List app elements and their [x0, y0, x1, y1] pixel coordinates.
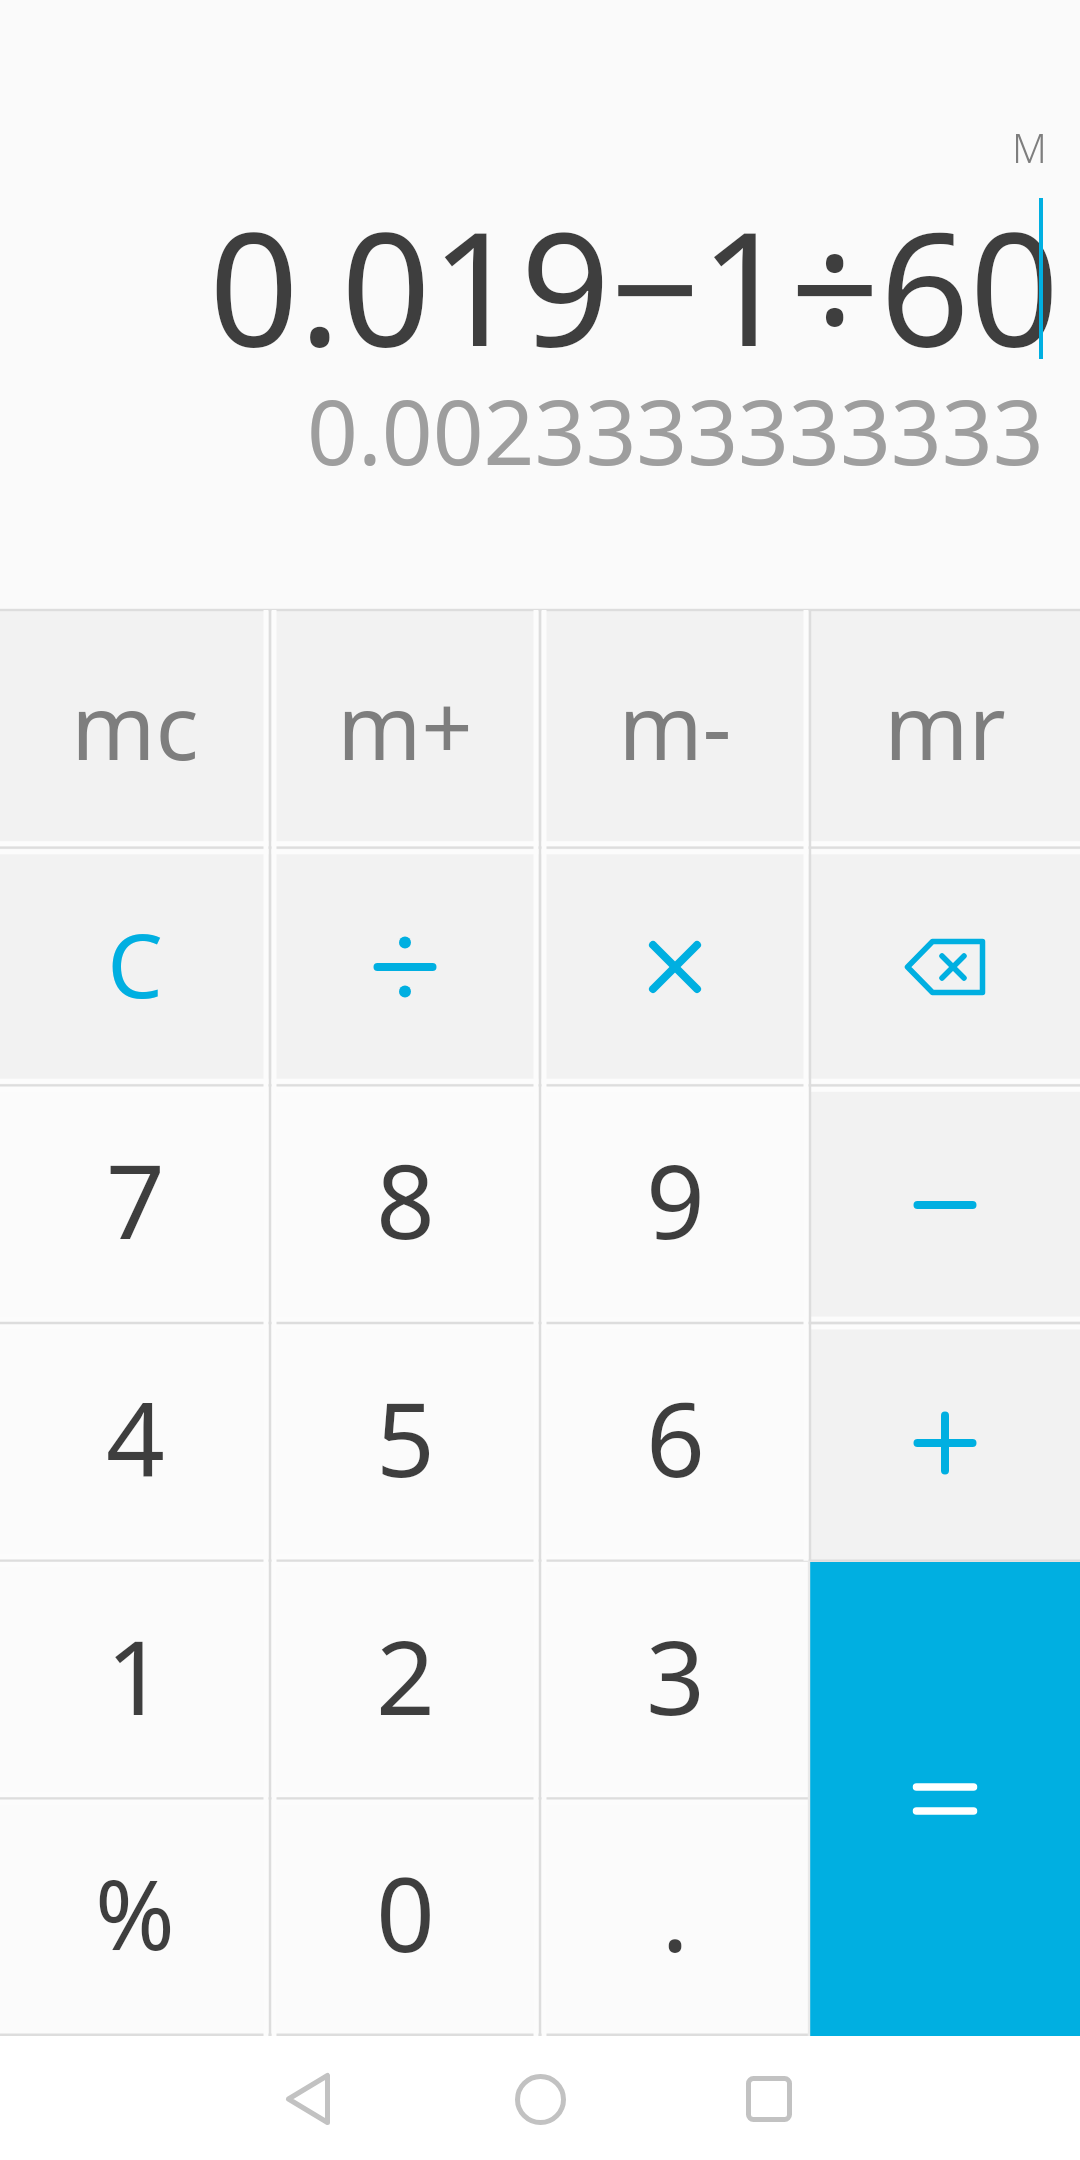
staticText: C	[107, 904, 163, 1024]
staticText: .	[661, 1842, 689, 1982]
button[interactable]: %	[0, 1800, 270, 2036]
staticText: m-	[618, 664, 732, 787]
button[interactable]: Multiply	[540, 848, 810, 1086]
button[interactable]: 9	[540, 1086, 810, 1324]
button[interactable]: 6	[540, 1324, 810, 1562]
staticText: 6	[646, 1367, 705, 1507]
button[interactable]: Equals	[810, 1562, 1080, 2036]
button[interactable]: Plus	[810, 1324, 1080, 1562]
staticText: 8	[376, 1129, 435, 1269]
button[interactable]: Home	[480, 2039, 600, 2159]
button[interactable]: Back	[248, 2039, 368, 2159]
staticText: M	[1012, 120, 1047, 174]
button[interactable]: mc	[0, 610, 270, 848]
staticText: 0.019−1÷60	[209, 178, 1060, 392]
staticText: %	[95, 1847, 175, 1978]
button[interactable]: 8	[270, 1086, 540, 1324]
staticText: m+	[337, 664, 473, 787]
button[interactable]: 5	[270, 1324, 540, 1562]
staticText: 9	[646, 1129, 705, 1269]
button[interactable]: 1	[0, 1562, 270, 1800]
button[interactable]: Divide	[270, 848, 540, 1086]
button[interactable]: Backspace	[810, 848, 1080, 1086]
button[interactable]: mr	[810, 610, 1080, 848]
button[interactable]: C	[0, 848, 270, 1086]
button[interactable]: .	[540, 1800, 810, 2036]
button[interactable]: 0	[270, 1800, 540, 2036]
button[interactable]: m+	[270, 610, 540, 848]
button[interactable]: 2	[270, 1562, 540, 1800]
staticText: 4	[106, 1367, 165, 1507]
staticText: 0	[376, 1842, 435, 1982]
staticText: 3	[646, 1605, 705, 1745]
button[interactable]: 3	[540, 1562, 810, 1800]
staticText: mr	[884, 664, 1006, 787]
button[interactable]: Recents	[709, 2039, 829, 2159]
staticText: 5	[376, 1367, 435, 1507]
staticText: 7	[106, 1129, 165, 1269]
staticText: 2	[376, 1605, 435, 1745]
button[interactable]: m-	[540, 610, 810, 848]
staticText: 1	[106, 1605, 165, 1745]
staticText: mc	[71, 664, 199, 787]
staticText: 0.0023333333333	[307, 370, 1044, 491]
button[interactable]: Minus	[810, 1086, 1080, 1324]
button[interactable]: 4	[0, 1324, 270, 1562]
button[interactable]: 7	[0, 1086, 270, 1324]
